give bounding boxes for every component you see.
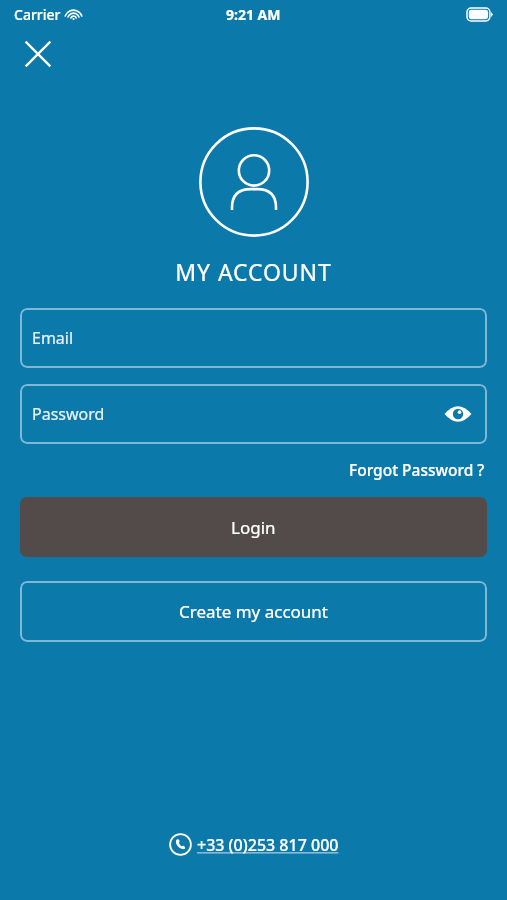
button[interactable]: Login: [20, 497, 487, 557]
button[interactable]: Password: [20, 384, 487, 444]
button[interactable]: +33 (0)253 817 000: [169, 833, 339, 856]
button[interactable]: Show password: [443, 399, 473, 429]
button[interactable]: Create my account: [20, 581, 487, 642]
staticText: Login: [231, 516, 276, 539]
button[interactable]: Close: [16, 32, 60, 76]
button[interactable]: Email: [20, 308, 487, 368]
staticText: Create my account: [179, 600, 328, 623]
staticText: MY ACCOUNT: [175, 256, 332, 287]
staticText: Carrier: [14, 5, 61, 24]
staticText: 9:21 AM: [226, 5, 281, 24]
staticText: Email: [32, 327, 74, 349]
staticText: Forgot Password ?: [349, 459, 485, 480]
staticText: +33 (0)253 817 000: [197, 834, 339, 856]
button[interactable]: Forgot Password ?: [347, 456, 487, 483]
staticText: Password: [32, 403, 105, 425]
